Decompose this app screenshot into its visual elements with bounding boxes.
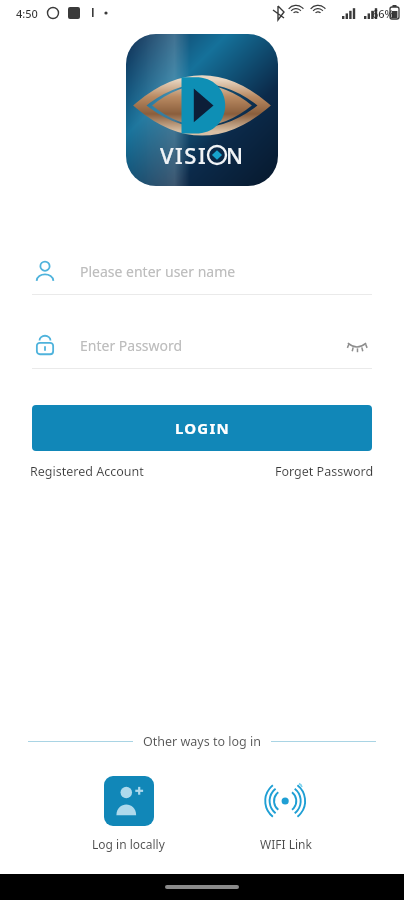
- staticText: Log in locally: [92, 836, 165, 852]
- staticText: 66%: [372, 6, 394, 21]
- staticText: VISI: [160, 140, 208, 170]
- staticText: Please enter user name: [80, 262, 372, 281]
- staticText: Other ways to log in: [143, 733, 261, 750]
- button[interactable]: Log in locally: [88, 772, 169, 856]
- staticText: Enter Password: [80, 336, 342, 355]
- button[interactable]: Show password: [342, 330, 372, 360]
- other: WIFI Link: [265, 780, 307, 822]
- button[interactable]: WIFI Link: [256, 772, 316, 856]
- staticText: N: [226, 140, 245, 170]
- staticText: Registered Account: [30, 463, 144, 480]
- button[interactable]: LOGIN: [32, 405, 372, 451]
- button[interactable]: Registered Account: [30, 460, 144, 483]
- staticText: Forget Password: [275, 463, 374, 480]
- staticText: WIFI Link: [260, 836, 312, 852]
- button[interactable]: Please enter user name: [32, 248, 372, 295]
- button[interactable]: Forget Password: [275, 460, 374, 483]
- staticText: 4:50: [16, 6, 38, 21]
- staticText: LOGIN: [175, 418, 230, 438]
- other: Log in locally: [112, 784, 146, 818]
- button[interactable]: Enter Password: [32, 322, 372, 369]
